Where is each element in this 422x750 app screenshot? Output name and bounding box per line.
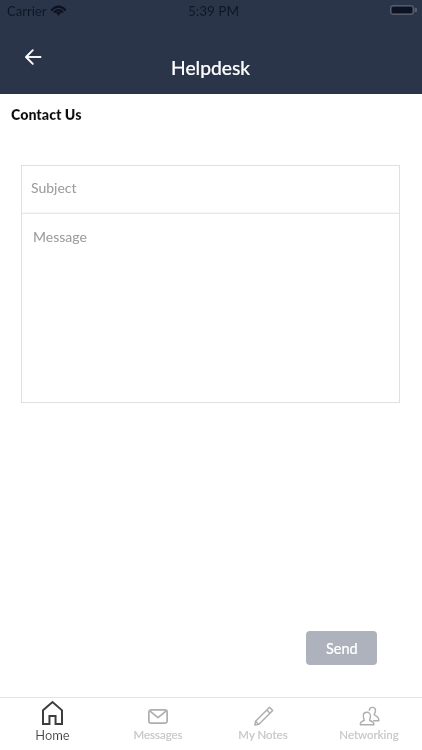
staticText: My Notes	[238, 728, 288, 742]
button[interactable]: Send	[306, 631, 377, 665]
button[interactable]: Back	[11, 35, 55, 79]
staticText: Helpdesk	[171, 56, 251, 79]
staticText: Send	[326, 640, 358, 657]
button[interactable]: Networking	[316, 698, 422, 750]
button[interactable]: Home	[0, 698, 105, 750]
staticText: Message	[33, 228, 87, 245]
staticText: Networking	[339, 728, 399, 742]
staticText: Carrier	[7, 3, 47, 19]
staticText: Home	[35, 727, 70, 742]
button[interactable]: Messages	[105, 698, 210, 750]
staticText: Subject	[31, 179, 77, 196]
button[interactable]: Message	[21, 213, 400, 403]
button[interactable]: Subject	[21, 165, 400, 213]
staticText: 5:39 PM	[188, 3, 240, 19]
staticText: Messages	[133, 728, 183, 742]
staticText: Contact Us	[11, 106, 82, 123]
button[interactable]: My Notes	[210, 698, 316, 750]
